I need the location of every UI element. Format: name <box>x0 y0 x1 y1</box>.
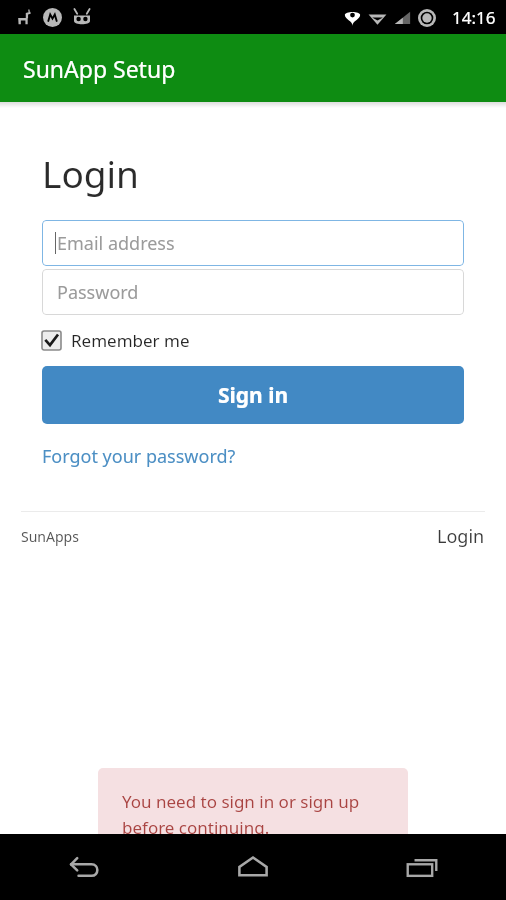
staticText: You need to sign in or sign up <box>122 790 360 813</box>
staticText: Sign in <box>218 381 289 410</box>
button[interactable]: Email address <box>42 220 464 266</box>
button[interactable]: SunApps <box>21 527 79 546</box>
staticText: Login <box>437 524 485 549</box>
button[interactable]: Sign in <box>42 366 464 424</box>
staticText: SunApps <box>21 527 79 546</box>
staticText: 14:16 <box>452 6 496 29</box>
button[interactable]: Back <box>0 834 168 900</box>
staticText: Password <box>57 280 139 305</box>
button[interactable]: You need to sign in or sign up <box>98 768 408 834</box>
button[interactable]: Remember me <box>42 329 190 352</box>
staticText: SunApp Setup <box>23 53 176 84</box>
button[interactable]: Home <box>168 834 337 900</box>
button[interactable]: Password <box>42 269 464 315</box>
staticText: Forgot your password? <box>42 444 236 469</box>
button[interactable]: Recent apps <box>337 834 506 900</box>
staticText: Login <box>42 148 139 198</box>
button[interactable]: Login <box>437 524 485 549</box>
button[interactable]: Forgot your password? <box>42 444 236 469</box>
staticText: Remember me <box>71 329 190 352</box>
staticText: Email address <box>57 231 175 256</box>
staticText: before continuing. <box>122 816 270 834</box>
